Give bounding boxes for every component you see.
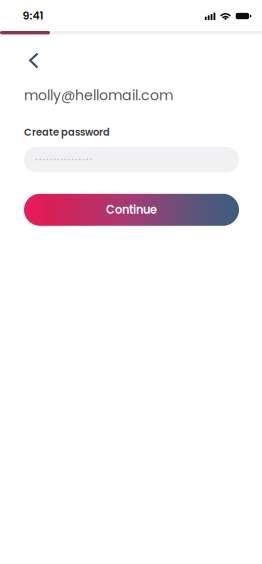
- staticText: Create password: [24, 125, 110, 139]
- staticText: molly@hellomail.com: [24, 85, 173, 105]
- button[interactable]: Back: [0, 34, 53, 77]
- staticText: Continue: [106, 202, 157, 218]
- button[interactable]: Continue: [24, 194, 239, 226]
- staticText: 9:41: [22, 8, 43, 23]
